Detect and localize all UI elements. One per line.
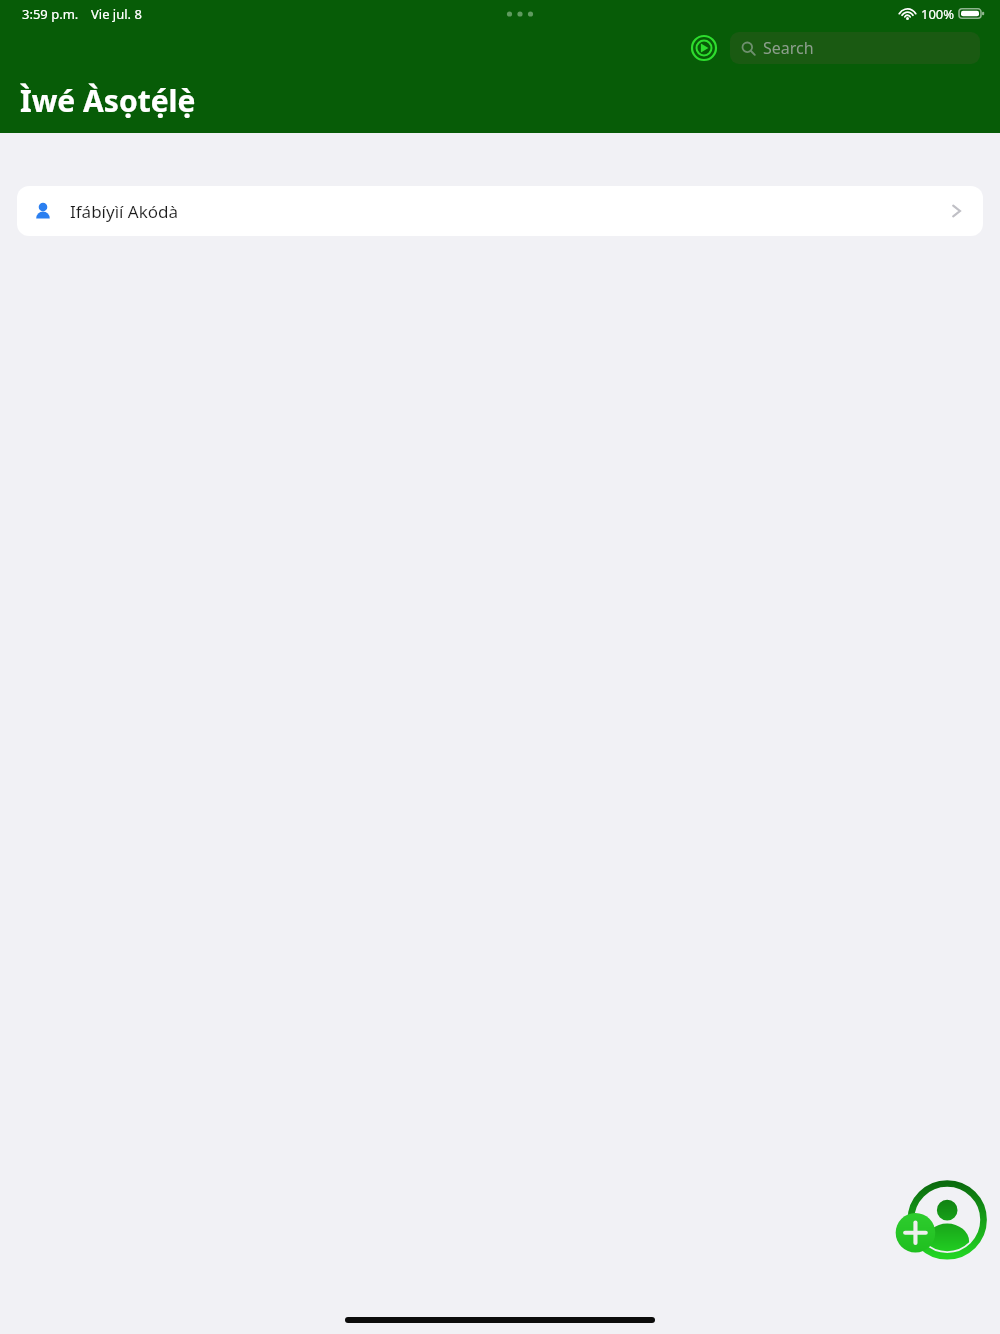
button[interactable]: Ifábíyìí Akódà	[17, 186, 983, 236]
staticText: 3:59 p.m.	[22, 5, 79, 23]
button[interactable]: Screen record	[687, 31, 721, 65]
staticText: Ifábíyìí Akódà	[70, 200, 179, 223]
staticText: Search	[763, 37, 814, 59]
staticText: 100%	[921, 5, 955, 23]
staticText: Ìwé Àsọtẹ́lẹ̀	[20, 80, 196, 121]
staticText: Vie jul. 8	[91, 5, 142, 23]
button[interactable]: Add contact	[892, 1178, 984, 1270]
button[interactable]: Search	[730, 32, 980, 64]
